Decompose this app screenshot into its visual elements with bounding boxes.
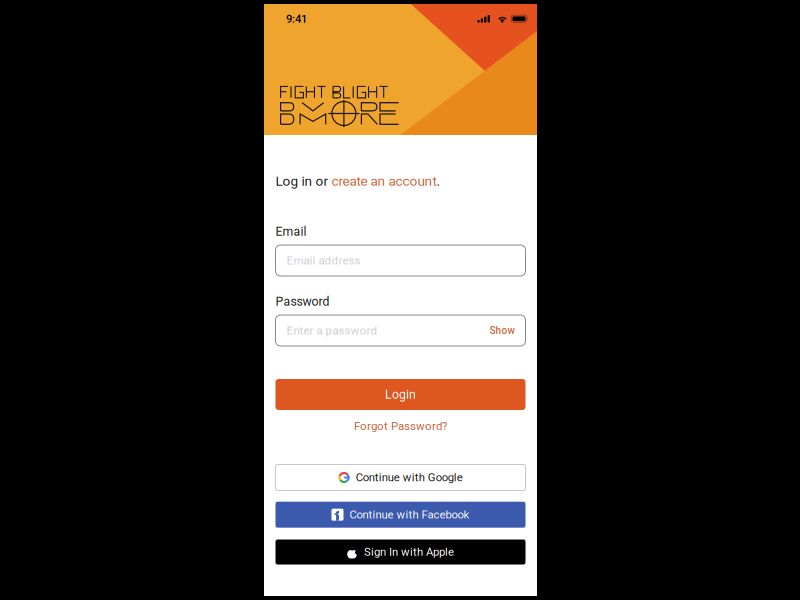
button[interactable]: create an account	[331, 173, 436, 189]
staticText: Forgot Password?	[354, 419, 447, 433]
button[interactable]: Sign In with Apple	[275, 539, 525, 564]
staticText: Password	[275, 294, 329, 309]
button[interactable]: Forgot Password?	[275, 417, 525, 434]
staticText: Log in or	[275, 173, 331, 189]
staticText: Login	[385, 387, 416, 402]
staticText: Continue with Facebook	[349, 508, 469, 521]
staticText: create an account	[331, 173, 436, 189]
staticText: Continue with Google	[356, 471, 463, 484]
staticText: Enter a password	[286, 324, 377, 337]
staticText: Email	[275, 224, 306, 239]
button[interactable]: Continue with Facebook	[275, 502, 525, 528]
staticText: .	[436, 173, 440, 189]
button[interactable]: Continue with Google	[275, 464, 525, 490]
button[interactable]: Login	[275, 379, 525, 410]
staticText: 9:41	[286, 12, 307, 25]
staticText: Show	[489, 325, 514, 336]
staticText: Sign In with Apple	[364, 545, 454, 559]
staticText: Email address	[286, 254, 360, 267]
